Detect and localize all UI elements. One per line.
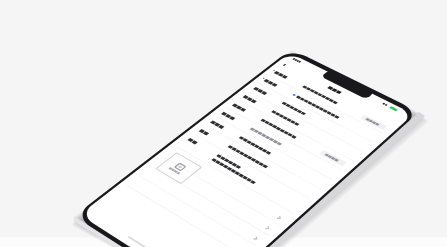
button[interactable]: Phone mockup showing an inventory form s… <box>0 0 447 247</box>
